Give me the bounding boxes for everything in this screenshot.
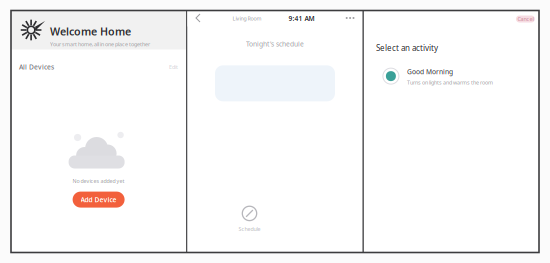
button[interactable]: Schedule (232, 205, 266, 232)
staticText: 9:41 AM (288, 14, 314, 23)
staticText: Your smart home, all in one place togeth… (50, 40, 150, 48)
staticText: Select an activity (376, 42, 438, 53)
staticText: No devices added yet (73, 177, 125, 185)
staticText: Tonight's schedule (246, 39, 304, 48)
staticText: All Devices (19, 62, 54, 71)
staticText: Edit (169, 63, 178, 70)
button[interactable]: Add Device (73, 192, 125, 208)
button[interactable]: Edit (169, 63, 178, 70)
staticText: Schedule (238, 225, 260, 232)
staticText: Living Room (232, 15, 261, 22)
staticText: Add Device (81, 195, 117, 204)
button[interactable]: More (341, 10, 358, 27)
staticText: Good Morning (407, 67, 453, 76)
staticText: Turns on lights and warms the room (407, 79, 493, 86)
button[interactable]: Back (191, 10, 205, 27)
staticText: Welcome Home (50, 24, 131, 39)
staticText: Cancel (517, 15, 533, 23)
button[interactable]: Cancel (516, 15, 535, 22)
